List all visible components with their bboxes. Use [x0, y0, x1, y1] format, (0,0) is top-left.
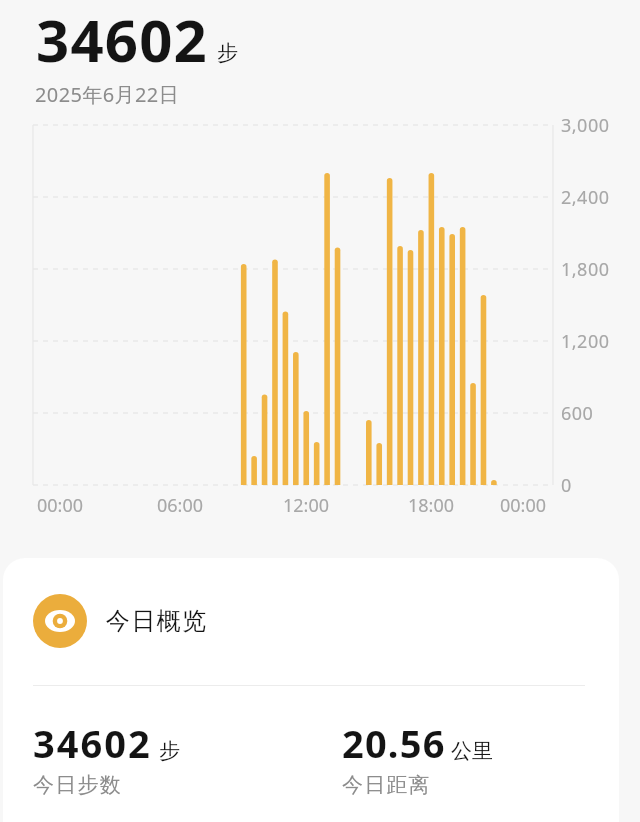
staticText: 600 [561, 401, 594, 425]
staticText: 步 [159, 738, 180, 764]
staticText: 34602 [33, 717, 152, 769]
staticText: 00:00 [500, 493, 547, 517]
staticText: 12:00 [283, 493, 330, 517]
staticText: 2025年6月22日 [35, 81, 180, 108]
staticText: 1,200 [561, 329, 610, 353]
button[interactable]: 20.56 [342, 717, 493, 798]
button[interactable]: 34602 [33, 717, 342, 798]
staticText: 18:00 [408, 493, 455, 517]
staticText: 今日概览 [105, 606, 207, 636]
staticText: 06:00 [157, 493, 204, 517]
staticText: 步 [217, 40, 238, 66]
staticText: 20.56 [342, 717, 446, 769]
button[interactable]: 今日概览 [33, 594, 207, 648]
staticText: 0 [561, 473, 572, 497]
staticText: 3,000 [561, 113, 610, 137]
staticText: 00:00 [37, 493, 84, 517]
staticText: 34602 [36, 0, 208, 79]
staticText: 公里 [451, 738, 493, 764]
staticText: 今日步数 [33, 772, 122, 798]
staticText: 1,800 [561, 257, 610, 281]
staticText: 今日距离 [342, 772, 431, 798]
staticText: 2,400 [561, 185, 610, 209]
